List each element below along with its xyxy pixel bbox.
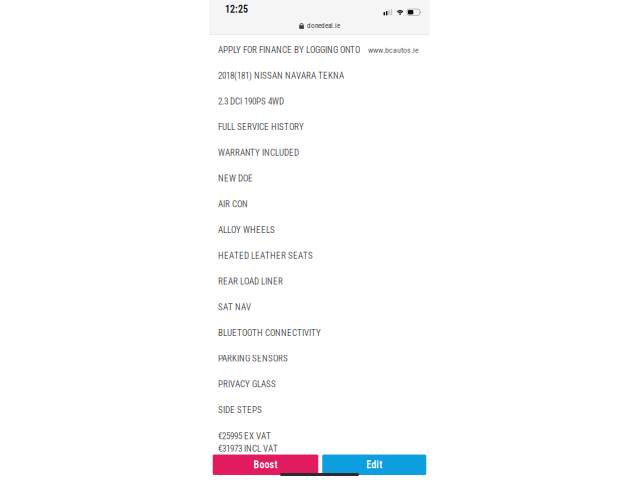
staticText: €25995 EX VAT [218, 431, 271, 441]
button[interactable]: Boost [213, 454, 318, 475]
staticText: €31973 INCL VAT [218, 443, 278, 454]
staticText: Edit [366, 459, 382, 471]
staticText: ALLOY WHEELS [218, 225, 275, 235]
staticText: BLUETOOTH CONNECTIVITY [218, 327, 321, 338]
staticText: SIDE STEPS [218, 405, 262, 415]
staticText: PARKING SENSORS [218, 353, 288, 364]
staticText: Boost [253, 459, 277, 471]
staticText: PRIVACY GLASS [218, 379, 276, 389]
staticText: SAT NAV [218, 302, 251, 312]
staticText: 2.3 DCI 190PS 4WD [218, 96, 284, 107]
staticText: 2018(181) NISSAN NAVARA TEKNA [218, 70, 344, 81]
staticText: REAR LOAD LINER [218, 276, 283, 287]
staticText: 12:25 [225, 3, 248, 15]
staticText: WARRANTY INCLUDED [218, 147, 299, 158]
staticText: NEW DOE [218, 173, 253, 184]
staticText: APPLY FOR FINANCE BY LOGGING ONTO [218, 44, 360, 55]
staticText: HEATED LEATHER SEATS [218, 250, 313, 261]
staticText: donedeal.ie [307, 21, 340, 30]
staticText: www.bcautos.ie [368, 45, 419, 55]
staticText: FULL SERVICE HISTORY [218, 122, 304, 132]
button[interactable]: Edit [322, 454, 426, 475]
staticText: AIR CON [218, 199, 248, 209]
